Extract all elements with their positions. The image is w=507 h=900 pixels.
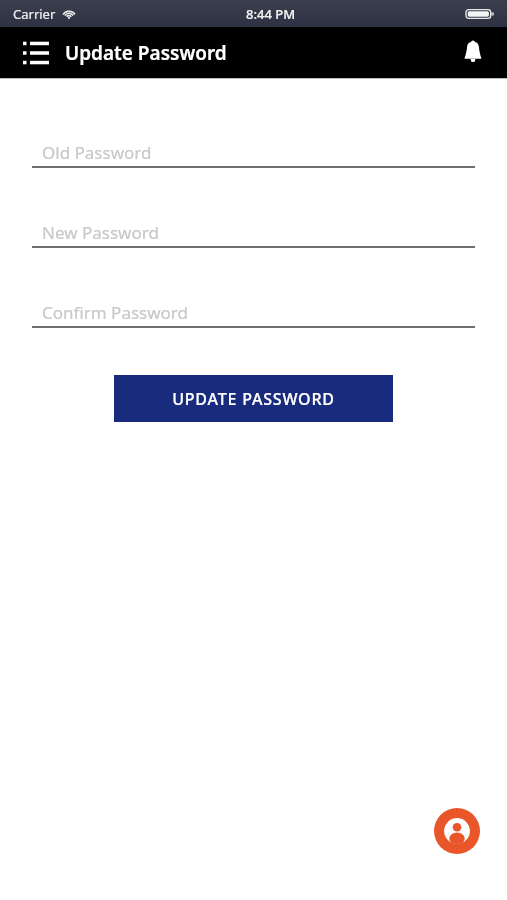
button[interactable]: New Password xyxy=(0,203,507,283)
staticText: UPDATE PASSWORD xyxy=(172,388,335,410)
staticText: New Password xyxy=(42,221,159,244)
button[interactable]: Menu xyxy=(14,31,58,75)
button[interactable]: UPDATE PASSWORD xyxy=(114,375,393,422)
button[interactable]: Account xyxy=(434,808,480,854)
button[interactable]: Old Password xyxy=(0,123,507,203)
button[interactable]: Notifications xyxy=(451,31,495,75)
staticText: Confirm Password xyxy=(42,301,188,324)
staticText: 8:44 PM xyxy=(246,5,296,23)
staticText: Old Password xyxy=(42,141,152,164)
button[interactable]: Confirm Password xyxy=(0,283,507,363)
staticText: Carrier xyxy=(13,5,56,23)
staticText: Update Password xyxy=(65,40,227,66)
